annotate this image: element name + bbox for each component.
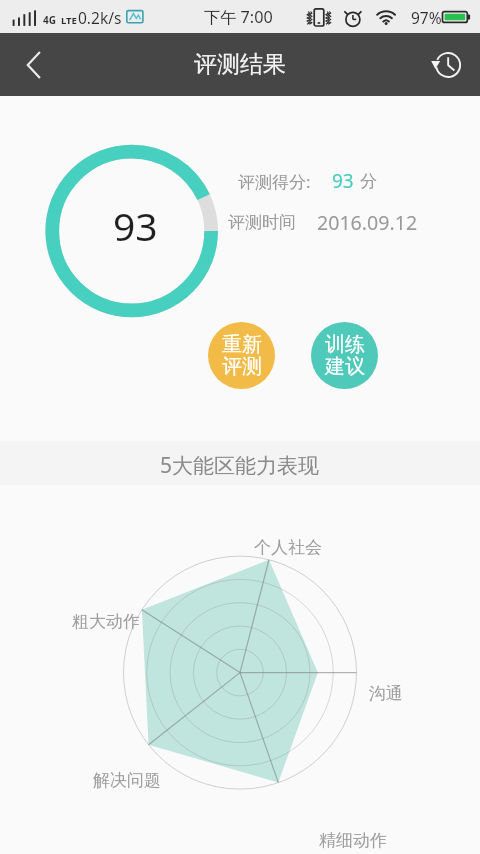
- staticText: 精细动作: [319, 830, 387, 851]
- staticText: 分: [360, 171, 377, 192]
- staticText: 下午 7:00: [204, 6, 273, 28]
- staticText: 0.2k/s: [78, 7, 122, 28]
- staticText: 93: [332, 168, 354, 194]
- button[interactable]: 训练 建议: [311, 322, 378, 389]
- staticText: 评测时间: [228, 212, 296, 233]
- staticText: 沟通: [369, 683, 403, 704]
- staticText: 重新 评测: [222, 332, 262, 379]
- staticText: 粗大动作: [72, 611, 140, 632]
- staticText: 解决问题: [93, 770, 161, 791]
- button[interactable]: Back: [8, 39, 60, 91]
- button[interactable]: History: [420, 39, 472, 91]
- staticText: 5大能区能力表现: [160, 451, 320, 480]
- staticText: 评测结果: [194, 50, 286, 79]
- staticText: 评测得分:: [238, 170, 311, 193]
- staticText: 4G: [43, 13, 56, 27]
- staticText: 2016.09.12: [317, 209, 418, 236]
- button[interactable]: 重新 评测: [208, 322, 275, 389]
- staticText: 93: [113, 199, 158, 249]
- staticText: 个人社会: [254, 537, 322, 558]
- staticText: LTE: [61, 14, 77, 27]
- staticText: 训练 建议: [325, 332, 365, 379]
- staticText: 97%: [411, 7, 442, 28]
